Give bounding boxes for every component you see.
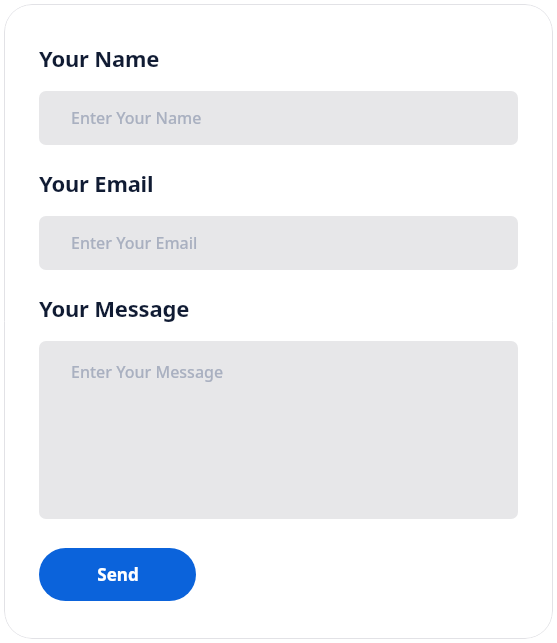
button[interactable]: Enter Your Name	[39, 91, 518, 145]
staticText: Your Email	[39, 168, 154, 198]
staticText: Send	[97, 563, 139, 586]
staticText: Enter Your Email	[71, 232, 198, 254]
button[interactable]: Enter Your Message	[39, 341, 518, 519]
staticText: Your Name	[39, 43, 160, 73]
button[interactable]: Send	[39, 548, 196, 601]
staticText: Enter Your Name	[71, 107, 202, 129]
staticText: Enter Your Message	[71, 361, 224, 383]
button[interactable]: Enter Your Email	[39, 216, 518, 270]
staticText: Your Message	[39, 293, 190, 323]
